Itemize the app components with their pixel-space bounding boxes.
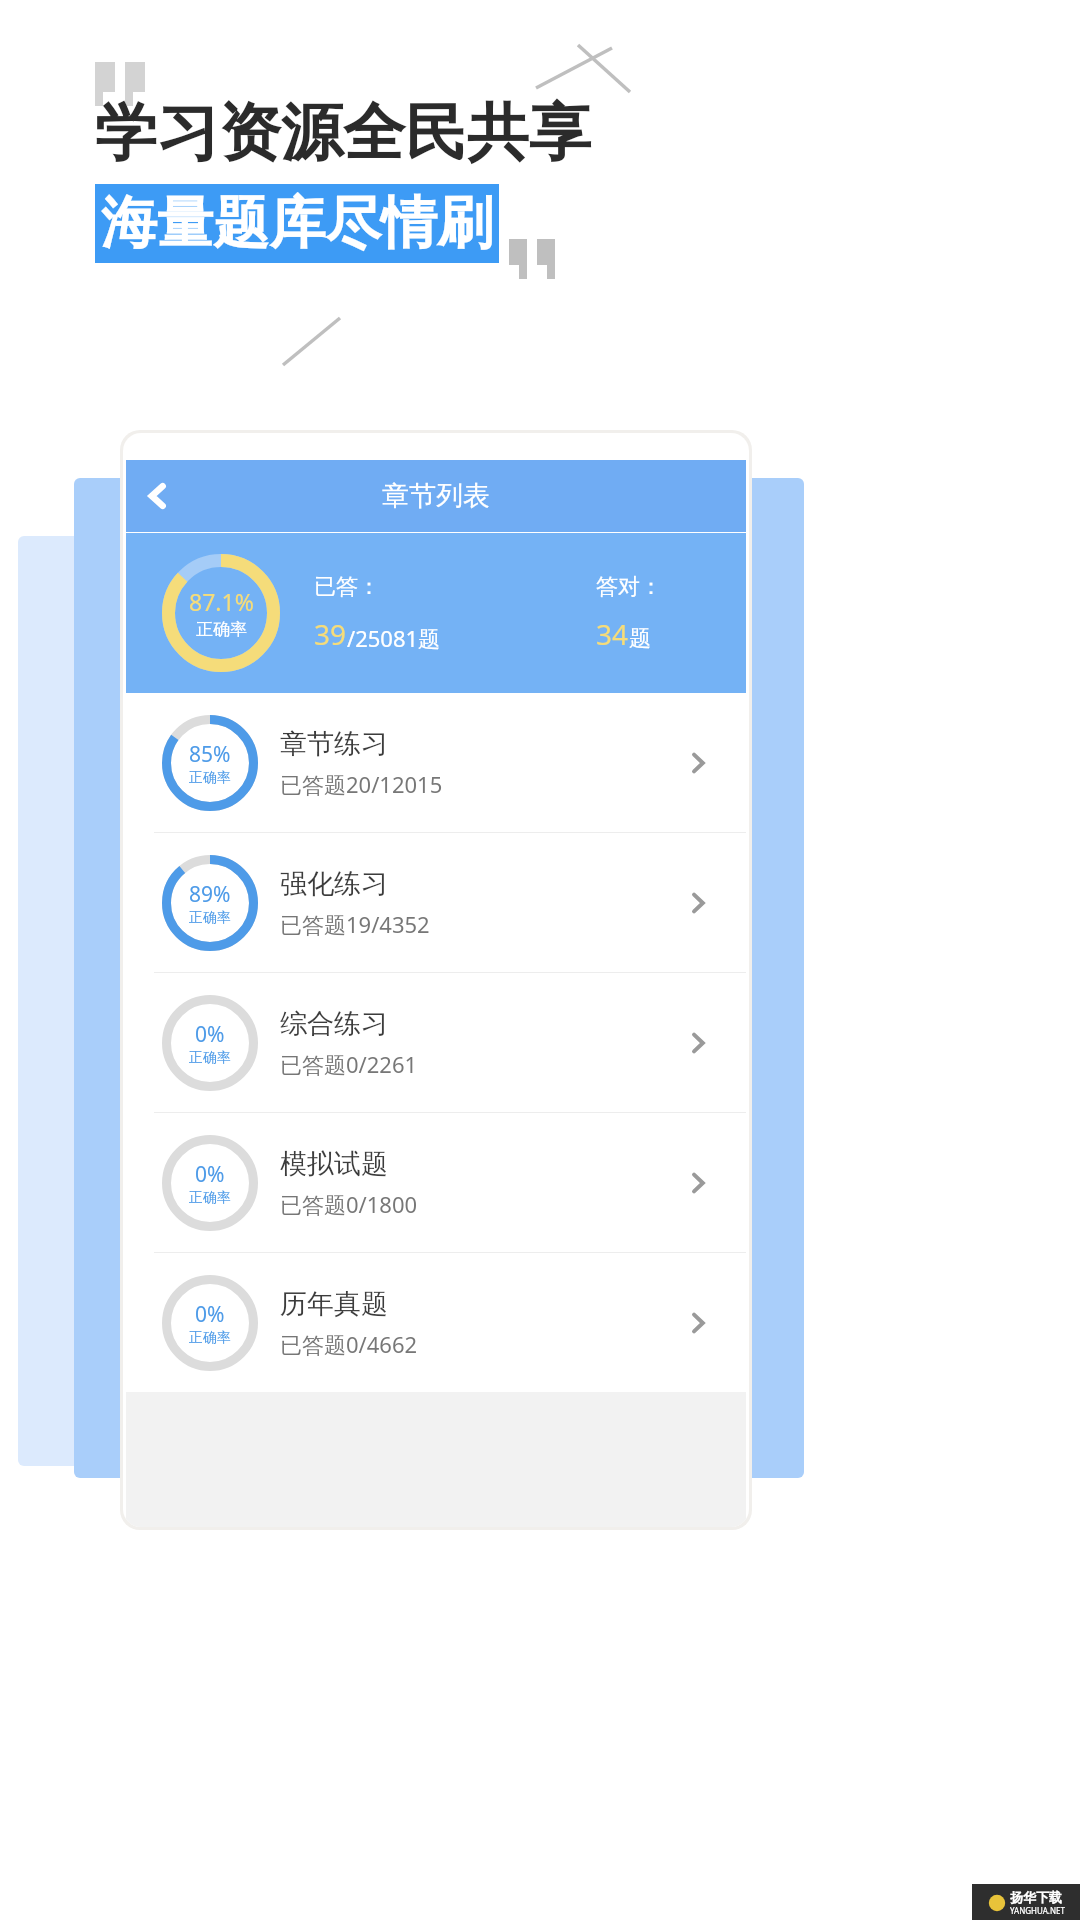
other: 进入综合练习 [676,1021,720,1065]
button[interactable]: 89% [126,833,746,972]
other: 进入历年真题 [676,1301,720,1345]
staticText: 历年真题 [280,1287,388,1321]
staticText: 已答： [314,573,380,601]
staticText: 强化练习 [280,867,388,901]
staticText: 综合练习 [280,1007,388,1041]
staticText: 正确率 [189,1189,231,1207]
staticText: 0% [195,1160,225,1189]
staticText: 0% [195,1020,225,1049]
button[interactable]: 返回 [126,464,190,528]
staticText: 模拟试题 [280,1147,388,1181]
staticText: 已答题20/12015 [280,769,443,799]
button[interactable]: 0% [126,973,746,1112]
staticText: 34 [596,615,629,653]
staticText: 章节列表 [382,479,490,513]
staticText: 已答题0/4662 [280,1329,418,1359]
staticText: 85% [189,740,231,769]
other: 进入强化练习 [676,881,720,925]
staticText: 正确率 [189,769,231,787]
staticText: 已答题19/4352 [280,909,430,939]
other: 进入章节练习 [676,741,720,785]
button[interactable]: 0% [126,1113,746,1252]
staticText: YANGHUA.NET [1010,1905,1065,1916]
staticText: 正确率 [196,619,247,640]
staticText: 89% [189,880,231,909]
staticText: 正确率 [189,1329,231,1347]
staticText: 答对： [596,573,662,601]
staticText: 扬华下载 [1010,1889,1062,1905]
staticText: 87.1% [189,586,254,617]
staticText: /25081题 [347,623,441,653]
staticText: 0% [195,1300,225,1329]
staticText: 已答题0/1800 [280,1189,418,1219]
staticText: 已答题0/2261 [280,1049,418,1079]
button[interactable]: 0% [126,1253,746,1392]
staticText: 正确率 [189,1049,231,1067]
staticText: 海量题库尽情刷 [101,188,493,259]
staticText: 章节练习 [280,727,388,761]
staticText: 39 [314,615,347,653]
other: 进入模拟试题 [676,1161,720,1205]
staticText: 正确率 [189,909,231,927]
staticText: 题 [629,625,651,653]
staticText: 学习资源全民共享 [95,94,591,172]
button[interactable]: 85% [126,693,746,832]
